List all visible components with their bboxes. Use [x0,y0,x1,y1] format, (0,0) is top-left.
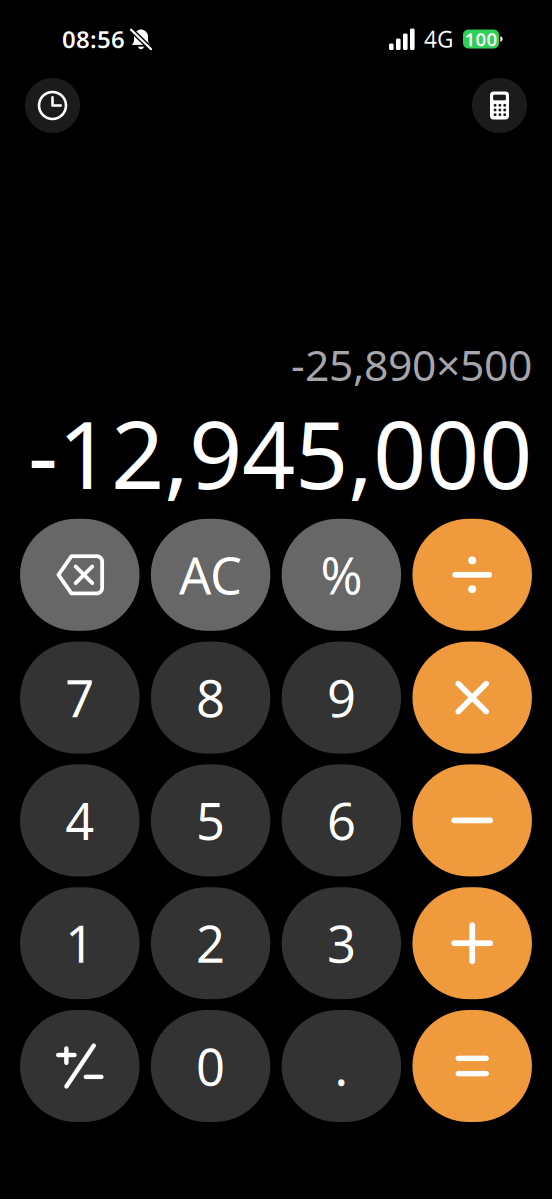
button[interactable]: 8 [151,642,270,754]
staticText: 1 [65,910,94,977]
button[interactable]: Divide [412,519,532,631]
button[interactable]: Add [412,887,532,999]
staticText: 3 [327,910,356,977]
staticText: 08:56 [62,23,125,55]
button[interactable]: Subtract [412,764,532,876]
button[interactable]: 2 [151,887,270,999]
staticText: -12,945,000 [28,391,532,515]
staticText: 4 [65,787,94,854]
staticText: AC [179,541,242,608]
button[interactable]: Scientific calculator [472,78,527,133]
staticText: 100 [464,27,497,51]
button[interactable]: 4 [20,764,140,876]
button[interactable]: Toggle sign [20,1010,140,1122]
button[interactable]: Multiply [412,642,532,754]
button[interactable]: 3 [282,887,401,999]
button[interactable]: 5 [151,764,270,876]
staticText: . [334,1032,348,1100]
button[interactable]: 6 [282,764,401,876]
staticText: 4G [424,24,454,54]
staticText: 8 [196,664,225,731]
button[interactable]: 7 [20,642,140,754]
button[interactable]: 9 [282,642,401,754]
staticText: 9 [327,664,356,731]
button[interactable]: . [282,1010,401,1122]
staticText: 5 [196,787,225,854]
button[interactable]: Delete [20,519,140,631]
button[interactable]: % [282,519,401,631]
button[interactable]: 1 [20,887,140,999]
button[interactable]: 0 [151,1010,270,1122]
staticText: % [320,541,362,608]
button[interactable]: AC [151,519,270,631]
staticText: 0 [196,1032,225,1100]
staticText: 6 [327,787,356,854]
staticText: 7 [65,664,94,731]
staticText: 2 [196,910,225,977]
button[interactable]: Equals [412,1010,532,1122]
button[interactable]: History [25,78,80,133]
staticText: -25,890×500 [291,336,532,393]
